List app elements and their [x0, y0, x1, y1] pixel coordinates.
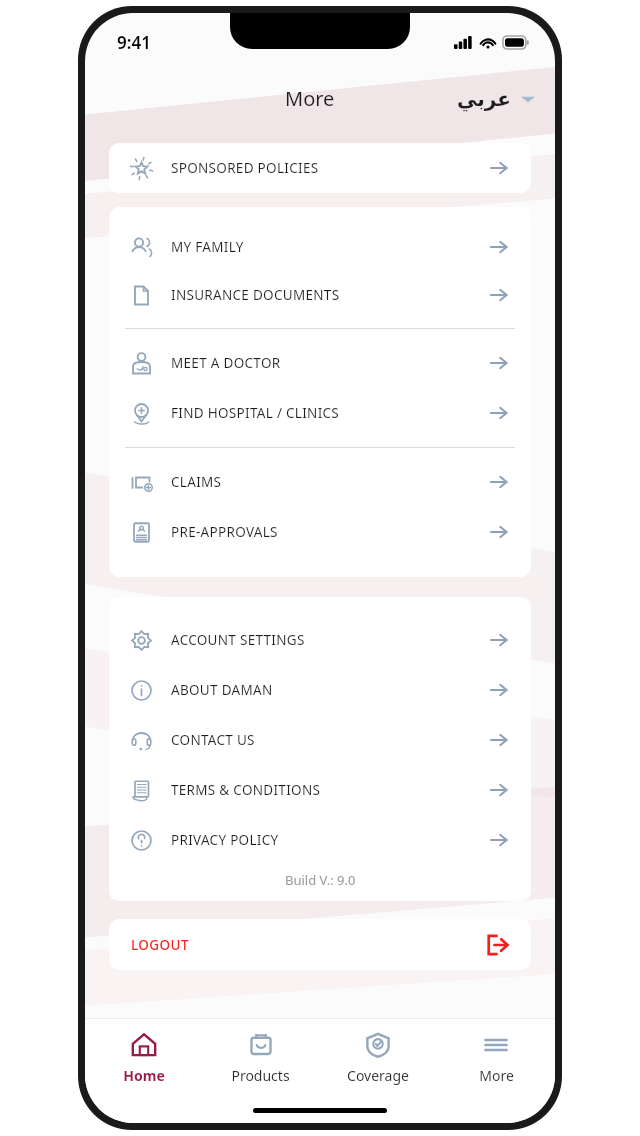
- staticText: Build V.: 9.0: [285, 871, 356, 889]
- staticText: PRE-APPROVALS: [171, 523, 278, 541]
- button[interactable]: Home: [85, 1019, 202, 1097]
- staticText: INSURANCE DOCUMENTS: [171, 286, 340, 304]
- staticText: عربي: [457, 87, 511, 110]
- staticText: SPONSORED POLICIES: [171, 159, 319, 177]
- button[interactable]: INSURANCE DOCUMENTS: [109, 271, 531, 319]
- staticText: ABOUT DAMAN: [171, 681, 273, 699]
- staticText: Home: [123, 1066, 165, 1085]
- staticText: More: [285, 85, 335, 112]
- staticText: ACCOUNT SETTINGS: [171, 631, 305, 649]
- button[interactable]: ABOUT DAMAN: [109, 665, 531, 715]
- button[interactable]: SPONSORED POLICIES: [109, 143, 531, 193]
- button[interactable]: CONTACT US: [109, 715, 531, 765]
- button[interactable]: Coverage: [319, 1019, 437, 1097]
- button[interactable]: LOGOUT: [109, 919, 531, 970]
- button[interactable]: PRIVACY POLICY: [109, 815, 531, 865]
- staticText: FIND HOSPITAL / CLINICS: [171, 404, 340, 422]
- staticText: MY FAMILY: [171, 238, 244, 256]
- staticText: More: [479, 1066, 514, 1085]
- staticText: MEET A DOCTOR: [171, 354, 281, 372]
- staticText: TERMS & CONDITIONS: [171, 781, 321, 799]
- button[interactable]: More: [437, 1019, 555, 1097]
- button[interactable]: MEET A DOCTOR: [109, 338, 531, 388]
- button[interactable]: CLAIMS: [109, 457, 531, 507]
- staticText: CONTACT US: [171, 731, 255, 749]
- button[interactable]: ACCOUNT SETTINGS: [109, 615, 531, 665]
- button[interactable]: PRE-APPROVALS: [109, 507, 531, 557]
- button[interactable]: TERMS & CONDITIONS: [109, 765, 531, 815]
- staticText: Coverage: [347, 1066, 409, 1085]
- staticText: LOGOUT: [131, 936, 189, 954]
- button[interactable]: FIND HOSPITAL / CLINICS: [109, 388, 531, 438]
- staticText: CLAIMS: [171, 473, 222, 491]
- staticText: PRIVACY POLICY: [171, 831, 279, 849]
- staticText: 9:41: [117, 31, 151, 54]
- button[interactable]: MY FAMILY: [109, 223, 531, 271]
- button[interactable]: عربي: [457, 87, 535, 110]
- staticText: Products: [231, 1066, 290, 1085]
- button[interactable]: Products: [202, 1019, 319, 1097]
